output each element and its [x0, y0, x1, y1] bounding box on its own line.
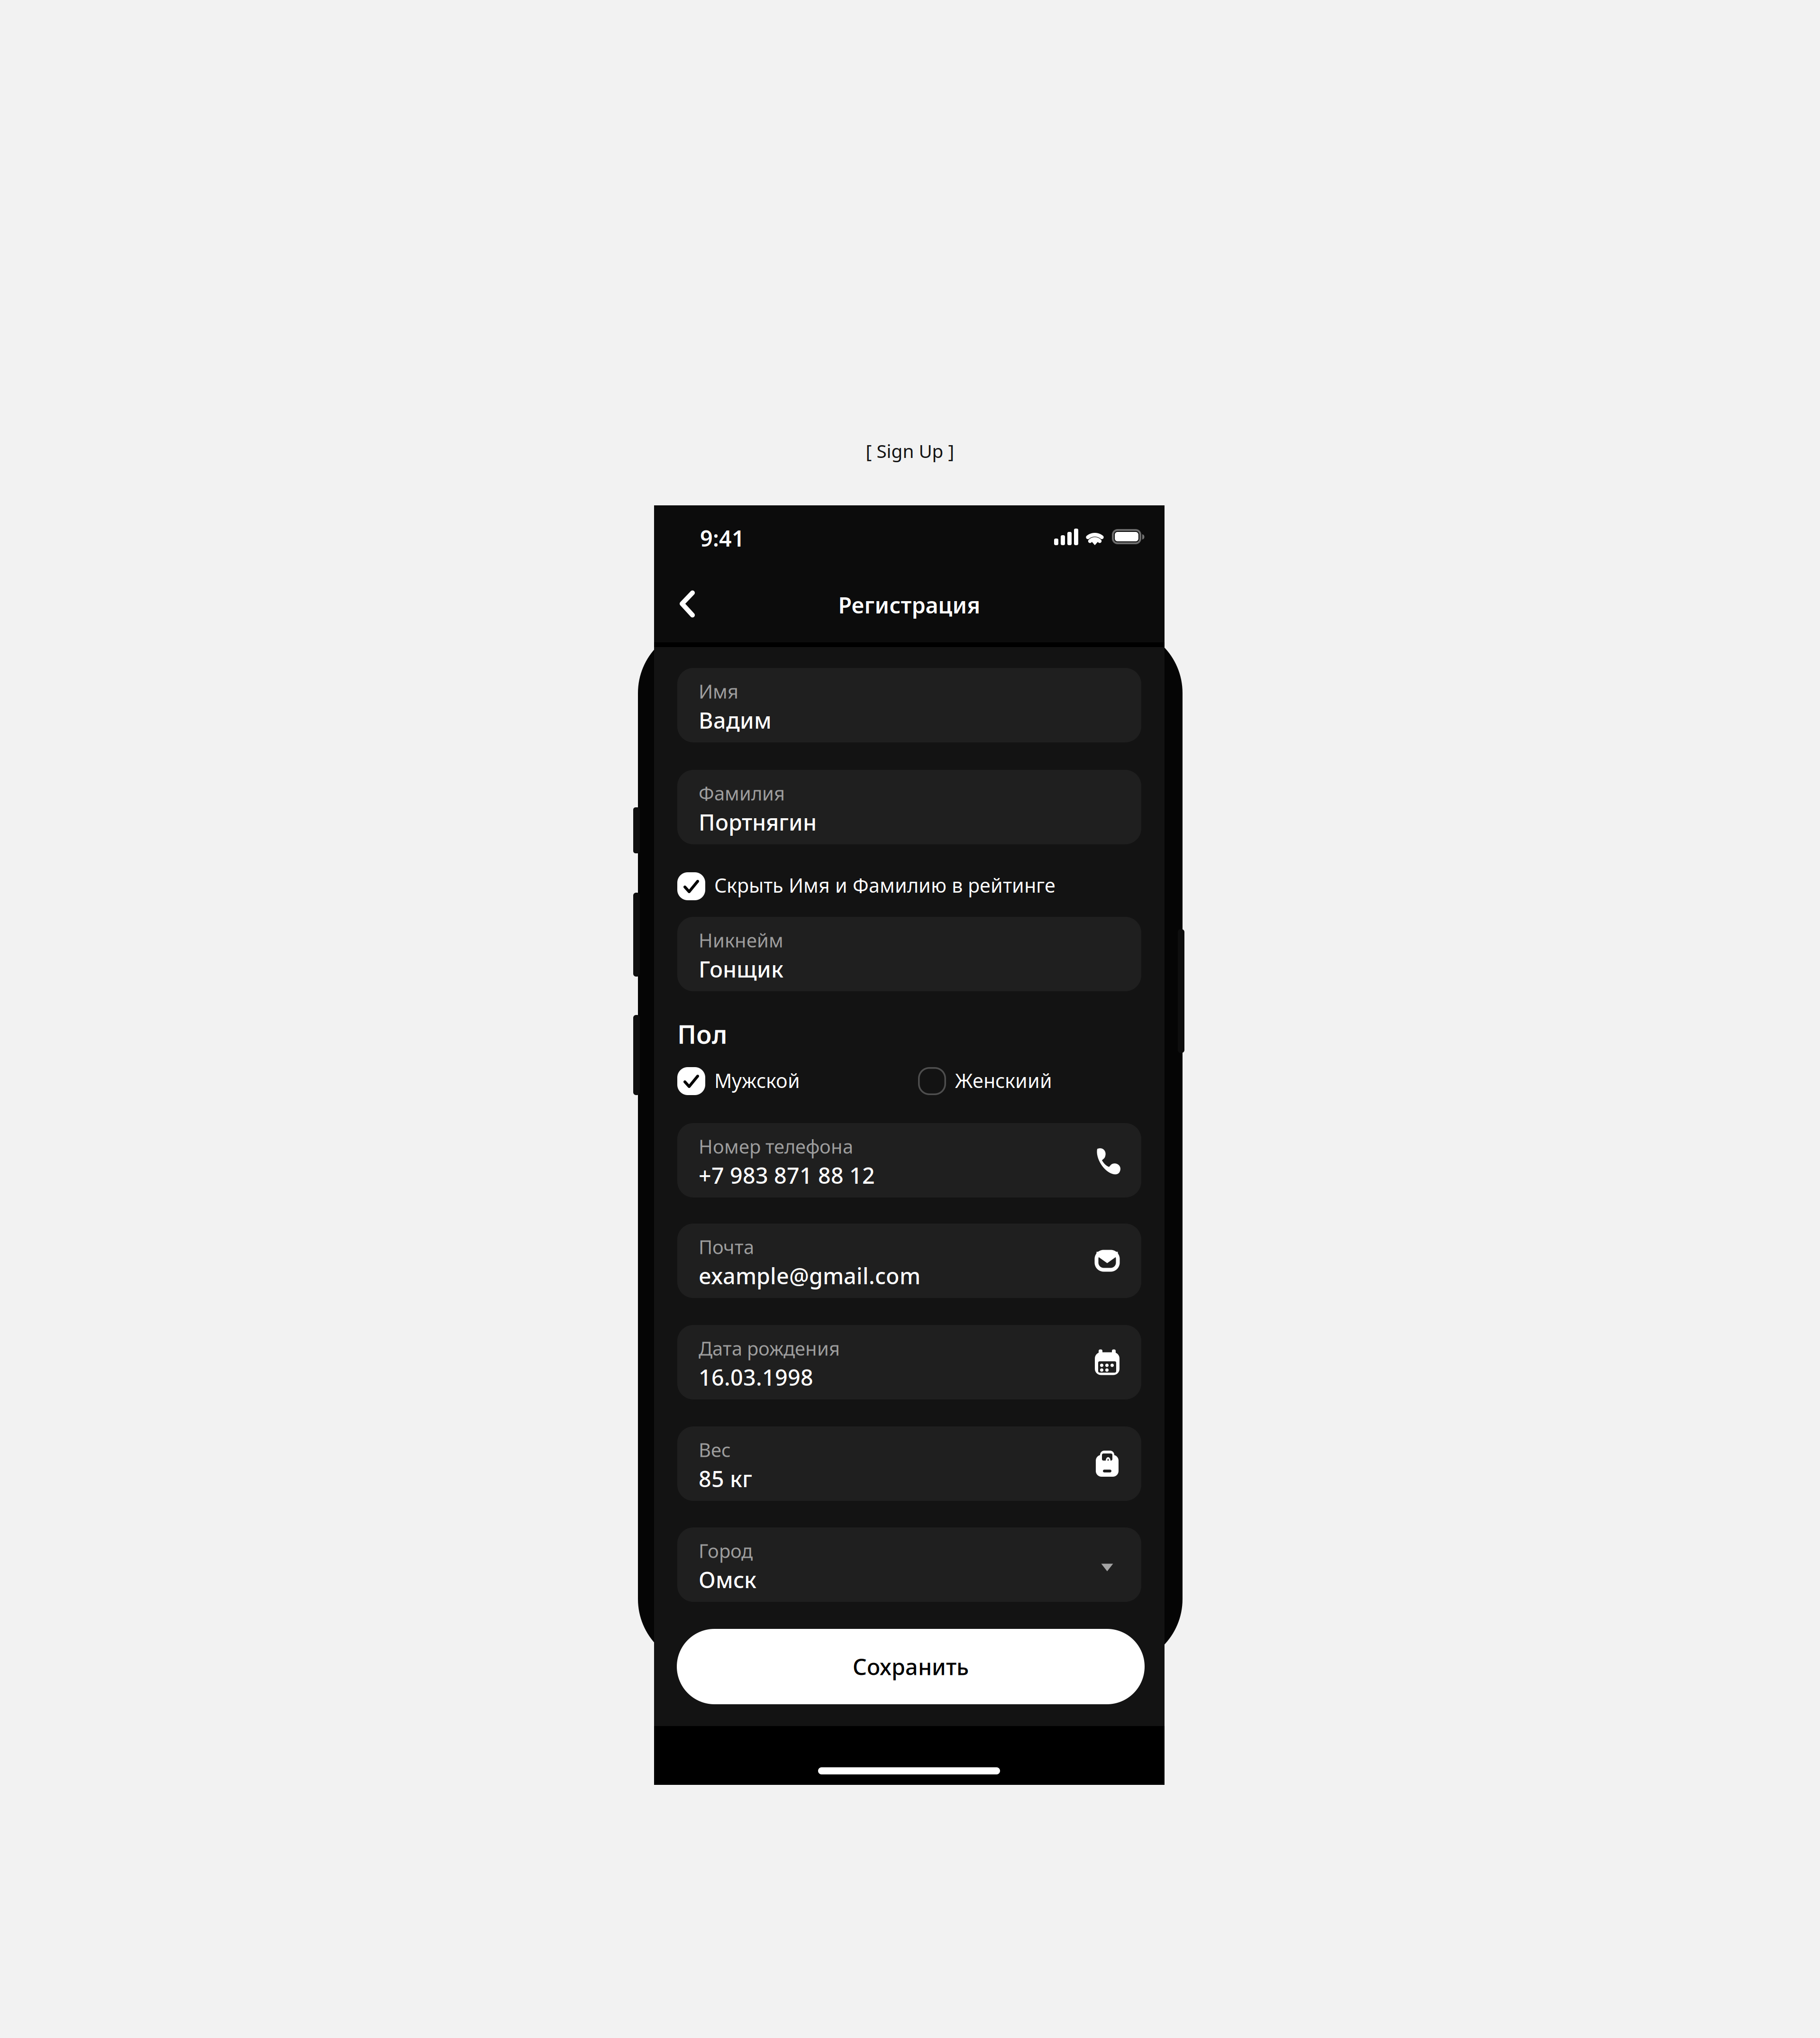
button[interactable]: Мужской	[677, 1067, 876, 1096]
staticText: Дата рождения	[699, 1336, 840, 1361]
staticText: Фамилия	[699, 780, 785, 806]
button[interactable]: Женскиий	[918, 1067, 1108, 1096]
button[interactable]: Фамилия	[677, 770, 1141, 844]
staticText: Портнягин	[699, 807, 817, 837]
staticText: Сохранить	[853, 1652, 969, 1681]
button[interactable]: Никнейм	[677, 917, 1141, 991]
button[interactable]: Номер телефона	[677, 1123, 1141, 1197]
staticText: Скрыть Имя и Фамилию в рейтинге	[714, 872, 1056, 898]
staticText: Номер телефона	[699, 1134, 853, 1159]
staticText: Город	[699, 1538, 753, 1563]
staticText: Женскиий	[955, 1067, 1052, 1093]
staticText: +7 983 871 88 12	[699, 1161, 875, 1190]
button[interactable]: Скрыть Имя и Фамилию в рейтинге	[677, 872, 1141, 900]
button[interactable]: Почта	[677, 1224, 1141, 1298]
staticText: Вадим	[699, 705, 772, 735]
staticText: Почта	[699, 1234, 754, 1259]
button[interactable]: Вес	[677, 1426, 1141, 1501]
staticText: example@gmail.com	[699, 1261, 920, 1290]
staticText: Никнейм	[699, 927, 783, 953]
staticText: Мужской	[714, 1067, 800, 1093]
button[interactable]: Город	[677, 1527, 1141, 1602]
staticText: Регистрация	[838, 590, 980, 620]
staticText: 9:41	[700, 523, 745, 553]
staticText: Омск	[699, 1565, 756, 1594]
staticText: Гонщик	[699, 954, 783, 984]
staticText: [ Sign Up ]	[866, 439, 954, 463]
staticText: Имя	[699, 679, 738, 704]
staticText: Пол	[677, 1017, 727, 1051]
staticText: Вес	[699, 1437, 731, 1462]
button[interactable]: Сохранить	[677, 1629, 1145, 1704]
button[interactable]: Back	[654, 590, 755, 618]
staticText: 85 кг	[699, 1464, 752, 1493]
staticText: 16.03.1998	[699, 1362, 813, 1392]
button[interactable]: Имя	[677, 668, 1141, 742]
button[interactable]: Дата рождения	[677, 1325, 1141, 1399]
